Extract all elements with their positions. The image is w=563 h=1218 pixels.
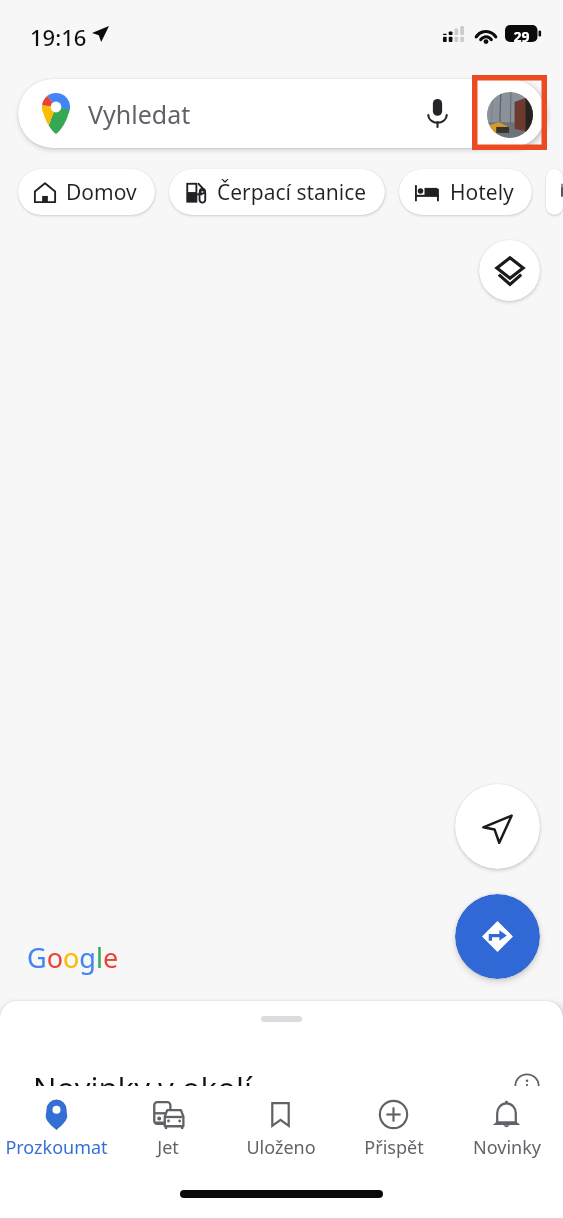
button[interactable]: Hlasové vyhledávání xyxy=(413,89,461,137)
button[interactable]: Rozbalit panel xyxy=(0,1001,563,1037)
staticText: Hotely xyxy=(450,178,514,207)
button[interactable]: Vyhledat xyxy=(18,79,545,148)
button[interactable]: Trasa xyxy=(455,894,540,979)
button[interactable]: Informace xyxy=(503,1063,551,1111)
button[interactable]: Novinky xyxy=(450,1086,563,1160)
button[interactable]: Přispět xyxy=(337,1086,450,1160)
button[interactable]: Hotely xyxy=(399,169,532,215)
button[interactable]: Moje poloha xyxy=(455,784,540,869)
staticText: Novinky xyxy=(473,1135,541,1160)
staticText: Jet xyxy=(157,1135,179,1160)
staticText: Uloženo xyxy=(246,1135,316,1160)
button[interactable]: Vrstvy mapy xyxy=(479,240,540,301)
button[interactable]: Prozkoumat xyxy=(0,1086,112,1160)
button[interactable]: Jet xyxy=(112,1086,224,1160)
staticText: 29 xyxy=(505,27,538,46)
staticText: Čerpací stanice xyxy=(217,178,367,207)
staticText: Google xyxy=(27,939,119,976)
staticText: Prozkoumat xyxy=(5,1135,108,1160)
button[interactable]: Domov xyxy=(18,169,155,215)
button[interactable]: Účet Google xyxy=(487,92,533,138)
staticText: Novinky v okolí xyxy=(33,1067,252,1109)
button[interactable]: Uloženo xyxy=(224,1086,337,1160)
button[interactable]: Obchody xyxy=(546,169,563,215)
button[interactable]: Čerpací stanice xyxy=(169,169,385,215)
staticText: Přispět xyxy=(364,1135,424,1160)
staticText: 19:16 xyxy=(30,22,87,52)
staticText: Domov xyxy=(66,178,137,207)
staticText: Vyhledat xyxy=(88,97,191,131)
